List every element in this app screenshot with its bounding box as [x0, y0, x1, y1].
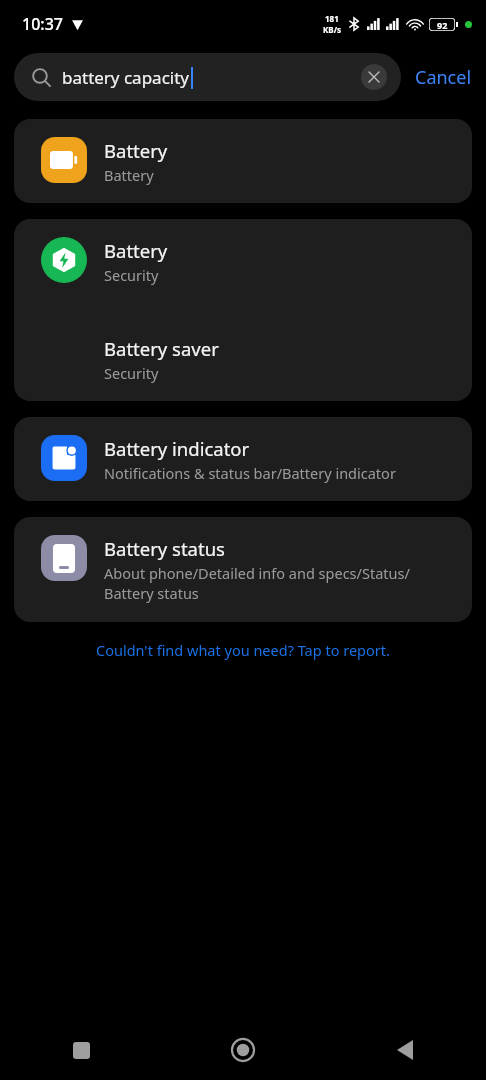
button[interactable]: Battery	[14, 119, 472, 203]
staticText: Battery	[104, 238, 168, 263]
button[interactable]: Recents	[0, 1020, 162, 1080]
staticText: Battery indicator	[104, 436, 250, 461]
button[interactable]: Battery	[14, 133, 472, 189]
staticText: Battery	[104, 165, 154, 185]
button[interactable]: Battery	[14, 219, 472, 401]
button[interactable]: Battery indicator	[14, 431, 472, 487]
button[interactable]: Battery status	[14, 531, 472, 608]
staticText: Notifications & status bar/Battery indic…	[104, 463, 396, 483]
staticText: Security	[104, 363, 159, 383]
staticText: Security	[104, 265, 159, 285]
staticText: Battery saver	[104, 336, 219, 361]
staticText: KB/s	[323, 24, 341, 35]
staticText: About phone/Detailed info and specs/Stat…	[104, 563, 448, 604]
staticText: Couldn't find what you need? Tap to repo…	[96, 640, 390, 660]
staticText: 181	[325, 13, 339, 24]
staticText: Battery	[104, 138, 168, 163]
button[interactable]: Battery indicator	[14, 417, 472, 501]
staticText: Cancel	[415, 65, 472, 90]
button[interactable]: Battery	[14, 233, 472, 289]
button[interactable]: battery capacity	[14, 53, 401, 101]
staticText: 92	[437, 19, 448, 31]
button[interactable]: Battery status	[14, 517, 472, 622]
staticText: battery capacity	[62, 66, 190, 89]
button[interactable]: Back	[324, 1020, 486, 1080]
staticText: 10:37	[22, 13, 63, 35]
button[interactable]: Couldn't find what you need? Tap to repo…	[0, 640, 486, 660]
staticText: Battery status	[104, 536, 225, 561]
button[interactable]: Home	[162, 1020, 324, 1080]
button[interactable]: Cancel	[401, 57, 486, 98]
button[interactable]: Battery saver	[14, 331, 472, 387]
button[interactable]: Clear search	[361, 64, 387, 90]
